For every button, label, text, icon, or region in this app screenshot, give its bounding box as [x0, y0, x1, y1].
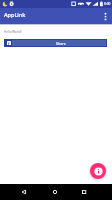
staticText: f: [8, 41, 10, 45]
button[interactable]: f: [5, 40, 106, 46]
button[interactable]: More options: [98, 9, 112, 23]
button[interactable]: Back: [16, 184, 32, 200]
button[interactable]: Recents: [76, 184, 92, 200]
button[interactable]: Info: [90, 163, 106, 179]
button[interactable]: Home: [47, 184, 63, 200]
staticText: AppLink: [4, 11, 26, 18]
staticText: 8:00: [104, 2, 111, 6]
staticText: Share: [56, 41, 66, 46]
staticText: Hello World!: [4, 30, 22, 34]
